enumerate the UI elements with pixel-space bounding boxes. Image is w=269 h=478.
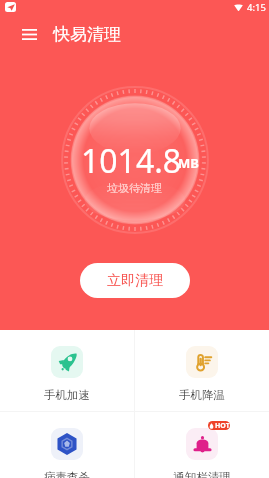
- button[interactable]: 手机降温: [135, 330, 269, 411]
- staticText: 通知栏清理: [173, 470, 231, 478]
- staticText: 立即清理: [107, 272, 163, 290]
- staticText: MB: [178, 154, 199, 172]
- staticText: 4:15: [247, 1, 266, 14]
- staticText: 垃圾待清理: [107, 181, 162, 195]
- staticText: 病毒查杀: [44, 470, 90, 478]
- button[interactable]: HOT: [135, 412, 269, 478]
- staticText: 1014.8: [81, 139, 182, 183]
- staticText: 快易清理: [53, 24, 121, 45]
- staticText: 手机加速: [44, 388, 90, 402]
- button[interactable]: Menu: [16, 21, 42, 47]
- staticText: HOT: [215, 421, 230, 430]
- staticText: 手机降温: [179, 388, 225, 402]
- button[interactable]: 手机加速: [0, 330, 134, 411]
- button[interactable]: 病毒查杀: [0, 412, 134, 478]
- button[interactable]: 立即清理: [80, 263, 190, 298]
